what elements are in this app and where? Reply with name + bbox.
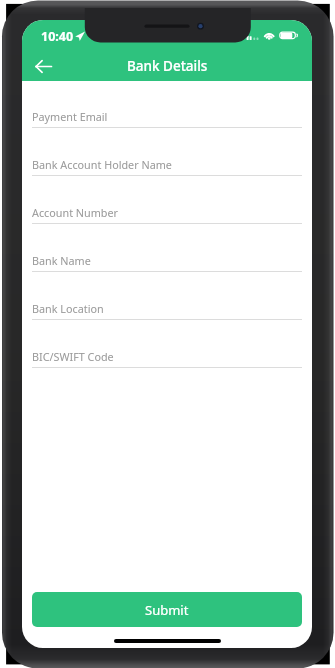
staticText: Bank Name xyxy=(32,253,91,268)
staticText: Account Number xyxy=(32,205,119,220)
staticText: Bank Account Holder Name xyxy=(32,157,172,172)
staticText: Submit xyxy=(145,601,189,619)
staticText: 10:40 xyxy=(41,28,74,45)
button[interactable]: Submit xyxy=(32,592,302,627)
staticText: Payment Email xyxy=(32,109,108,124)
staticText: Bank Location xyxy=(32,301,104,316)
staticText: Bank Details xyxy=(127,57,208,75)
staticText: BIC/SWIFT Code xyxy=(32,349,114,364)
button[interactable]: Back xyxy=(28,51,58,81)
